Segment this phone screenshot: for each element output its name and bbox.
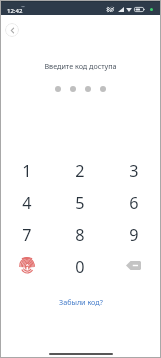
staticText: 0 — [75, 256, 85, 278]
staticText: 8 — [75, 224, 85, 246]
staticText: 6 — [129, 192, 139, 214]
button[interactable]: 1 — [0, 155, 53, 187]
button[interactable]: Fingerprint — [0, 251, 53, 283]
staticText: 2 — [75, 160, 85, 182]
staticText: 5 — [75, 192, 85, 214]
staticText: 9 — [129, 224, 139, 246]
button[interactable]: 0 — [53, 251, 107, 283]
button[interactable]: 4 — [0, 187, 53, 219]
button[interactable]: 9 — [107, 219, 161, 251]
staticText: 1 — [22, 160, 32, 182]
staticText: 4 — [22, 192, 32, 214]
button[interactable]: Забыли код? — [53, 294, 109, 310]
button[interactable]: 8 — [53, 219, 107, 251]
staticText: 7 — [22, 224, 32, 246]
button[interactable]: 3 — [107, 155, 161, 187]
button[interactable]: Back — [5, 23, 19, 37]
button[interactable]: 2 — [53, 155, 107, 187]
button[interactable]: 5 — [53, 187, 107, 219]
staticText: Введите код доступа — [44, 61, 117, 71]
button[interactable]: 7 — [0, 219, 53, 251]
button[interactable]: 6 — [107, 187, 161, 219]
staticText: Забыли код? — [59, 297, 103, 307]
staticText: 12:42 — [7, 7, 23, 15]
staticText: 3 — [129, 160, 139, 182]
button[interactable]: Backspace — [107, 251, 161, 283]
